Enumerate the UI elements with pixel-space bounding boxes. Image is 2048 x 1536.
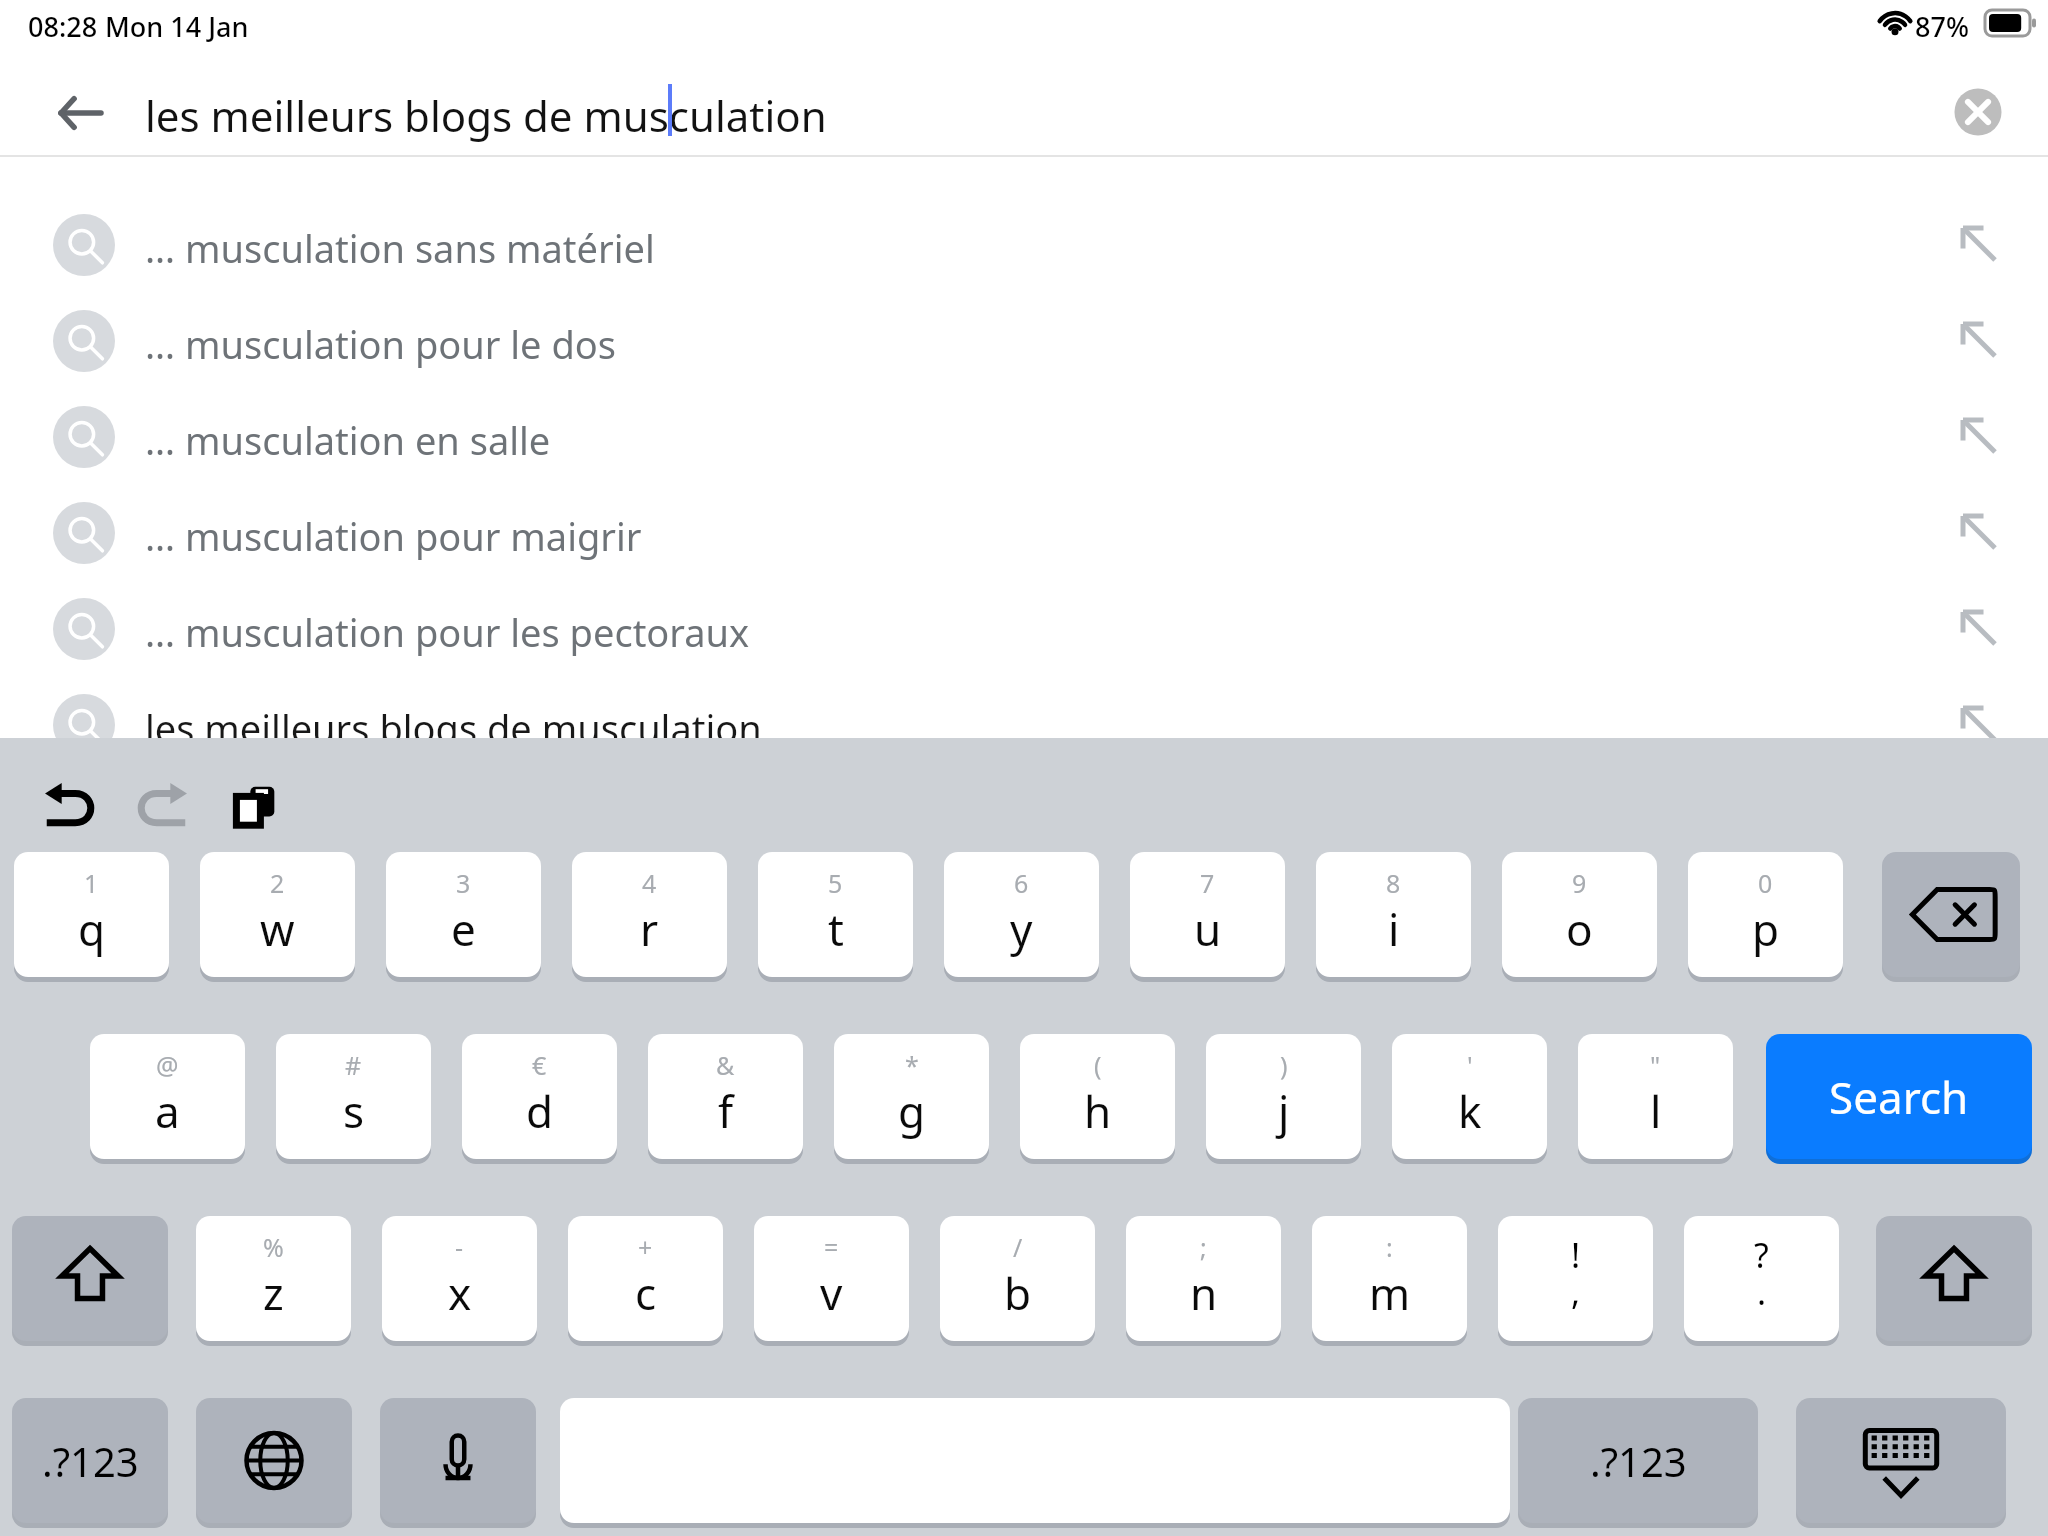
button[interactable]: … musculation pour le dos <box>0 294 2048 390</box>
button[interactable]: Redo <box>122 766 202 846</box>
button[interactable]: Change language <box>196 1398 352 1528</box>
button[interactable]: Space <box>560 1398 1510 1528</box>
staticText: … musculation pour le dos <box>145 318 616 370</box>
button[interactable]: 5 <box>758 852 913 982</box>
staticText: " <box>1650 1048 1661 1082</box>
staticText: c <box>635 1263 657 1323</box>
button[interactable]: … musculation pour maigrir <box>0 486 2048 582</box>
staticText: @ <box>156 1048 179 1082</box>
button[interactable]: les meilleurs blogs de musculation <box>0 678 2048 774</box>
staticText: h <box>1084 1081 1112 1141</box>
button[interactable]: 7 <box>1130 852 1285 982</box>
staticText: i <box>1388 899 1400 959</box>
staticText: ; <box>1200 1230 1207 1264</box>
button[interactable]: Back <box>45 78 115 148</box>
staticText: 7 <box>1200 866 1215 900</box>
button[interactable]: ) <box>1206 1034 1361 1164</box>
button[interactable]: " <box>1578 1034 1733 1164</box>
staticText: 2 <box>270 866 285 900</box>
staticText: + <box>638 1230 653 1264</box>
staticText: 5 <box>828 866 843 900</box>
button[interactable]: Hide keyboard <box>1796 1398 2006 1528</box>
staticText: q <box>78 899 106 959</box>
button[interactable]: … musculation en salle <box>0 390 2048 486</box>
staticText: … musculation sans matériel <box>145 222 655 274</box>
button[interactable]: ! <box>1498 1216 1653 1346</box>
staticText: … musculation pour les pectoraux <box>145 606 750 658</box>
button[interactable]: Shift <box>1876 1216 2032 1346</box>
button[interactable]: Numbers and symbols <box>1518 1398 1758 1528</box>
button[interactable]: / <box>940 1216 1095 1346</box>
button[interactable]: ? <box>1684 1216 1839 1346</box>
staticText: u <box>1194 899 1222 959</box>
staticText: m <box>1369 1263 1411 1323</box>
button[interactable]: 2 <box>200 852 355 982</box>
staticText: x <box>448 1263 472 1323</box>
staticText: 0 <box>1758 866 1773 900</box>
staticText: # <box>345 1048 362 1082</box>
staticText: … musculation pour maigrir <box>145 510 642 562</box>
button[interactable]: Shift <box>12 1216 168 1346</box>
button[interactable]: # <box>276 1034 431 1164</box>
staticText: ? <box>1754 1232 1769 1278</box>
staticText: .?123 <box>1590 1434 1687 1488</box>
button[interactable]: = <box>754 1216 909 1346</box>
button[interactable]: ( <box>1020 1034 1175 1164</box>
button[interactable]: & <box>648 1034 803 1164</box>
staticText: 87% <box>1915 8 1969 45</box>
staticText: b <box>1004 1263 1032 1323</box>
button[interactable]: 4 <box>572 852 727 982</box>
button[interactable]: Voice input <box>380 1398 536 1528</box>
staticText: ' <box>1467 1048 1473 1082</box>
staticText: ( <box>1094 1048 1102 1082</box>
button[interactable]: 3 <box>386 852 541 982</box>
staticText: - <box>455 1230 464 1264</box>
staticText: ) <box>1280 1048 1288 1082</box>
button[interactable]: @ <box>90 1034 245 1164</box>
button[interactable]: Numbers and symbols <box>12 1398 168 1528</box>
button[interactable]: Clear <box>1950 84 2006 140</box>
button[interactable]: ' <box>1392 1034 1547 1164</box>
staticText: e <box>451 899 476 959</box>
button[interactable]: * <box>834 1034 989 1164</box>
staticText: r <box>640 899 659 959</box>
button[interactable]: 1 <box>14 852 169 982</box>
button[interactable]: Backspace <box>1882 852 2020 982</box>
staticText: & <box>716 1048 735 1082</box>
staticText: les meilleurs blogs de musculation <box>145 702 762 754</box>
button[interactable]: Undo <box>30 766 110 846</box>
staticText: = <box>824 1230 839 1264</box>
staticText: t <box>828 899 844 959</box>
staticText: 8 <box>1386 866 1401 900</box>
staticText: Search <box>1829 1067 1969 1127</box>
button[interactable]: 6 <box>944 852 1099 982</box>
staticText: j <box>1278 1081 1290 1141</box>
staticText: n <box>1190 1263 1218 1323</box>
staticText: € <box>532 1048 547 1082</box>
staticText: s <box>343 1081 365 1141</box>
staticText: 4 <box>642 866 657 900</box>
button[interactable]: Copy <box>218 766 298 846</box>
button[interactable]: … musculation pour les pectoraux <box>0 582 2048 678</box>
button[interactable]: 9 <box>1502 852 1657 982</box>
staticText: 6 <box>1014 866 1029 900</box>
button[interactable]: + <box>568 1216 723 1346</box>
staticText: les meilleurs blogs de musculation <box>145 87 827 144</box>
button[interactable]: Search <box>1766 1034 2032 1164</box>
staticText: 3 <box>456 866 471 900</box>
button[interactable]: % <box>196 1216 351 1346</box>
button[interactable]: - <box>382 1216 537 1346</box>
staticText: a <box>155 1081 180 1141</box>
staticText: v <box>820 1263 843 1323</box>
button[interactable]: € <box>462 1034 617 1164</box>
staticText: / <box>1013 1230 1023 1264</box>
staticText: … musculation en salle <box>145 414 551 466</box>
button[interactable]: 8 <box>1316 852 1471 982</box>
button[interactable]: … musculation sans matériel <box>0 198 2048 294</box>
button[interactable]: : <box>1312 1216 1467 1346</box>
button[interactable]: ; <box>1126 1216 1281 1346</box>
staticText: % <box>263 1230 284 1264</box>
button[interactable]: 0 <box>1688 852 1843 982</box>
staticText: l <box>1650 1081 1662 1141</box>
staticText: ! <box>1571 1232 1581 1278</box>
